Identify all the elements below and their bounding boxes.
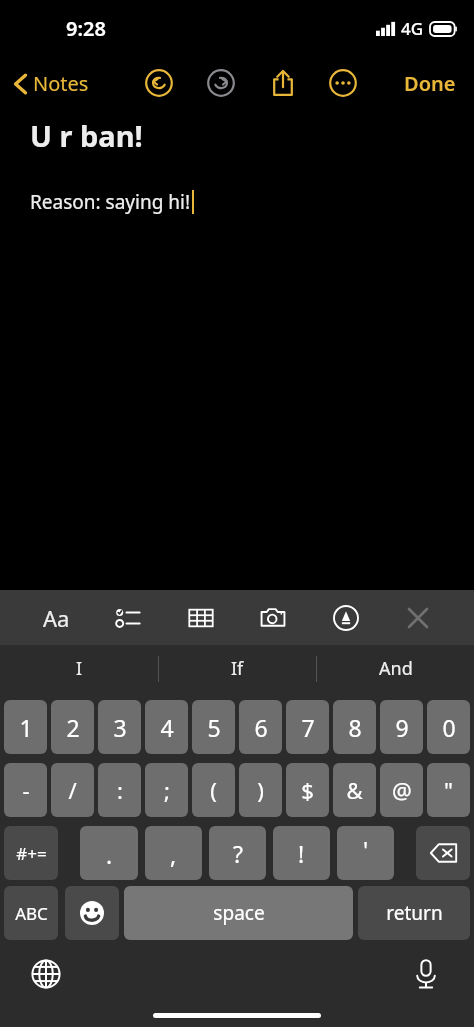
staticText: 1 (19, 712, 33, 743)
button[interactable]: ? (209, 826, 266, 880)
staticText: - (22, 775, 30, 805)
staticText: Done (404, 70, 456, 97)
button[interactable]: return (358, 886, 470, 940)
staticText: 4 (160, 712, 174, 743)
staticText: & (346, 775, 363, 805)
staticText: , (170, 839, 177, 870)
staticText: ( (210, 775, 217, 805)
staticText: #+= (16, 842, 47, 865)
staticText: 3 (113, 712, 127, 743)
staticText: / (68, 775, 77, 805)
staticText: ABC (15, 902, 48, 925)
staticText: 8 (348, 712, 362, 743)
button[interactable]: . (80, 826, 138, 880)
button[interactable]: 9 (380, 700, 423, 754)
button[interactable]: Aa (33, 595, 79, 641)
button[interactable]: ABC (4, 886, 58, 940)
staticText: 4G (401, 17, 424, 40)
button[interactable]: More (323, 63, 363, 103)
staticText: And (379, 656, 413, 681)
staticText: @ (392, 775, 412, 805)
staticText: 7 (301, 712, 315, 743)
button[interactable]: Close keyboard (395, 595, 441, 641)
button[interactable]: ) (239, 763, 282, 817)
button[interactable]: If (159, 645, 316, 692)
button[interactable]: : (98, 763, 141, 817)
button[interactable]: ' (337, 826, 394, 880)
button[interactable]: And (317, 645, 474, 692)
button[interactable]: Notes (10, 64, 93, 103)
button[interactable]: Change keyboard language (24, 952, 68, 996)
button[interactable]: Emoji (65, 886, 119, 940)
button[interactable]: Undo (139, 63, 179, 103)
staticText: If (231, 656, 244, 681)
button[interactable]: , (145, 826, 202, 880)
button[interactable]: Done (398, 64, 462, 103)
button[interactable]: 2 (51, 700, 94, 754)
staticText: 9:28 (66, 15, 106, 42)
staticText: Reason: saying hi! (30, 189, 191, 215)
button[interactable]: 5 (192, 700, 235, 754)
button[interactable]: 8 (333, 700, 376, 754)
staticText: ) (257, 775, 264, 805)
button[interactable]: Dictation (404, 952, 448, 996)
button[interactable]: Share (263, 63, 303, 103)
staticText: . (106, 839, 113, 870)
button[interactable]: 3 (98, 700, 141, 754)
staticText: space (213, 900, 265, 926)
staticText: 6 (254, 712, 268, 743)
button[interactable]: space (124, 886, 353, 940)
button[interactable]: ( (192, 763, 235, 817)
staticText: 0 (442, 712, 456, 743)
button[interactable]: Markup (323, 595, 369, 641)
staticText: : (117, 775, 123, 805)
button[interactable]: ! (273, 826, 330, 880)
button[interactable]: 4 (145, 700, 188, 754)
staticText: Notes (33, 70, 89, 97)
button[interactable]: Camera (250, 595, 296, 641)
staticText: ! (298, 838, 305, 869)
button[interactable]: Checklist (105, 595, 151, 641)
staticText: 5 (207, 712, 221, 743)
button[interactable]: Delete (416, 826, 470, 880)
staticText: U r ban! (30, 116, 143, 155)
staticText: " (444, 775, 453, 805)
staticText: Aa (43, 603, 70, 633)
button[interactable]: 1 (4, 700, 47, 754)
staticText: I (76, 656, 83, 681)
button[interactable]: - (4, 763, 47, 817)
button[interactable]: Redo (201, 63, 241, 103)
button[interactable]: I (0, 645, 158, 692)
button[interactable]: / (51, 763, 94, 817)
button[interactable]: $ (286, 763, 329, 817)
staticText: ' (363, 834, 369, 865)
staticText: 9 (395, 712, 409, 743)
button[interactable]: #+= (4, 826, 58, 880)
staticText: return (386, 900, 443, 926)
staticText: ; (164, 775, 170, 805)
staticText: ? (233, 838, 243, 869)
button[interactable]: 7 (286, 700, 329, 754)
button[interactable]: 0 (427, 700, 470, 754)
button[interactable]: ; (145, 763, 188, 817)
button[interactable]: @ (380, 763, 423, 817)
button[interactable]: " (427, 763, 470, 817)
button[interactable]: 6 (239, 700, 282, 754)
staticText: $ (301, 775, 314, 805)
button[interactable]: Table (178, 595, 224, 641)
button[interactable]: & (333, 763, 376, 817)
staticText: 2 (66, 712, 80, 743)
